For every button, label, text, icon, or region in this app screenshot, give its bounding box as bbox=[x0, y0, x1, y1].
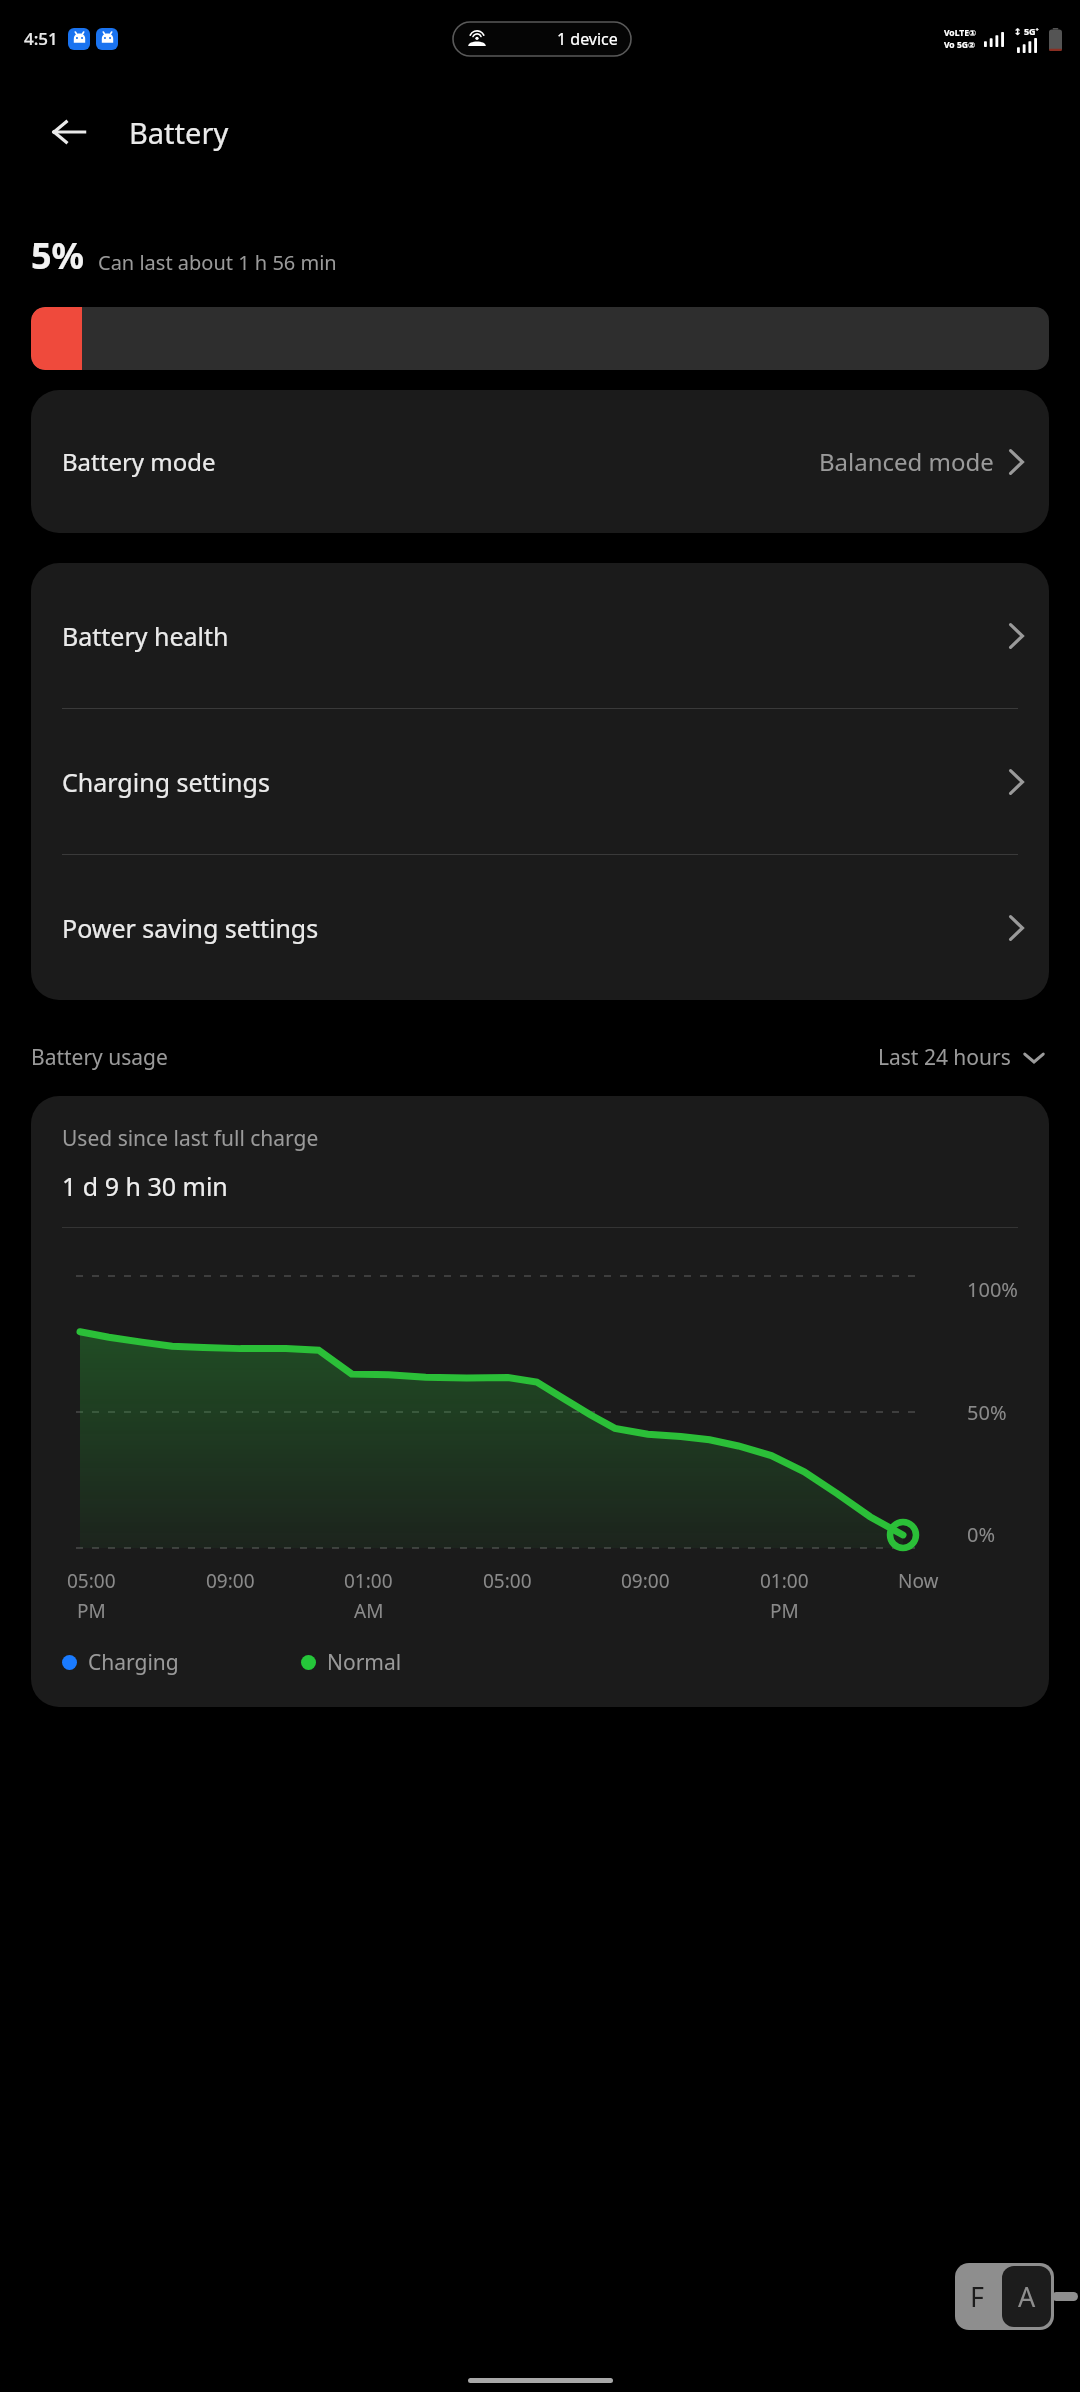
staticText: ↕ 5G⁺ bbox=[1014, 25, 1039, 37]
staticText: Normal bbox=[327, 1648, 402, 1677]
staticText: PM bbox=[77, 1598, 106, 1624]
staticText: Vo 5G② bbox=[944, 39, 976, 51]
button[interactable]: Charging settings bbox=[31, 709, 1049, 854]
staticText: 05:00 bbox=[483, 1568, 532, 1594]
staticText: A bbox=[1018, 2278, 1036, 2315]
staticText: Last 24 hours bbox=[878, 1043, 1011, 1072]
staticText: Battery bbox=[129, 113, 229, 152]
staticText: Used since last full charge bbox=[62, 1124, 319, 1153]
button[interactable]: Back bbox=[40, 103, 98, 161]
staticText: Balanced mode bbox=[819, 445, 994, 478]
staticText: 09:00 bbox=[621, 1568, 670, 1594]
staticText: Charging bbox=[88, 1648, 179, 1677]
staticText: Battery usage bbox=[31, 1043, 168, 1072]
staticText: F bbox=[970, 2278, 985, 2315]
button[interactable]: Last 24 hours bbox=[874, 1039, 1049, 1076]
staticText: 1 d 9 h 30 min bbox=[62, 1169, 228, 1203]
button[interactable]: 1 device bbox=[453, 22, 631, 56]
staticText: PM bbox=[770, 1598, 799, 1624]
button[interactable]: Battery health bbox=[31, 563, 1049, 708]
staticText: Can last about 1 h 56 min bbox=[98, 249, 337, 276]
staticText: Battery health bbox=[62, 619, 229, 653]
staticText: 01:00 bbox=[344, 1568, 393, 1594]
staticText: 1 device bbox=[557, 28, 618, 50]
button[interactable]: Battery mode bbox=[31, 390, 1049, 533]
staticText: 05:00 bbox=[67, 1568, 116, 1594]
staticText: Battery mode bbox=[62, 445, 216, 478]
staticText: 5% bbox=[31, 231, 85, 280]
staticText: Charging settings bbox=[62, 765, 270, 799]
staticText: 01:00 bbox=[760, 1568, 809, 1594]
staticText: 09:00 bbox=[206, 1568, 255, 1594]
staticText: AM bbox=[354, 1598, 384, 1624]
staticText: 50% bbox=[967, 1399, 1007, 1426]
button[interactable]: Floating assistant bbox=[955, 2263, 1054, 2330]
staticText: 4:51 bbox=[24, 27, 58, 50]
staticText: 0% bbox=[967, 1521, 996, 1548]
staticText: Power saving settings bbox=[62, 911, 319, 945]
staticText: VoLTE① bbox=[944, 27, 977, 39]
button[interactable]: Power saving settings bbox=[31, 855, 1049, 1000]
staticText: 100% bbox=[967, 1276, 1018, 1303]
staticText: Now bbox=[898, 1568, 939, 1594]
